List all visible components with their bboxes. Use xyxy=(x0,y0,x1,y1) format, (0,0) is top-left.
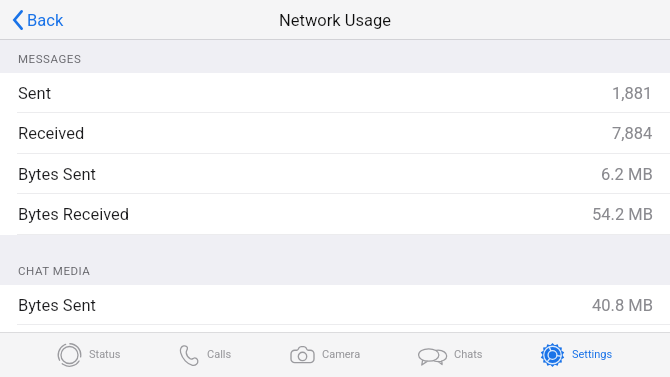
staticText: 7,884 xyxy=(612,124,653,143)
other: Back xyxy=(13,10,23,30)
button[interactable]: Sent xyxy=(0,73,670,113)
button[interactable]: Calls xyxy=(178,332,232,377)
staticText: Sent xyxy=(18,84,52,103)
staticText: 1,881 xyxy=(612,84,653,103)
button[interactable]: Chats xyxy=(418,332,483,377)
button[interactable]: Bytes Received xyxy=(0,194,670,235)
button[interactable]: Bytes Sent xyxy=(0,154,670,194)
button[interactable]: Received xyxy=(0,113,670,154)
staticText: CHAT MEDIA xyxy=(18,264,91,277)
button[interactable]: Status xyxy=(57,332,121,377)
staticText: Calls xyxy=(207,348,232,361)
button[interactable]: Settings xyxy=(540,332,613,377)
staticText: Status xyxy=(89,348,121,361)
staticText: Bytes Sent xyxy=(18,165,96,184)
staticText: Network Usage xyxy=(279,11,391,30)
staticText: 54.2 MB xyxy=(592,205,653,224)
staticText: 40.8 MB xyxy=(592,296,653,315)
staticText: Received xyxy=(18,124,85,143)
staticText: Chats xyxy=(454,348,483,361)
staticText: Camera xyxy=(322,348,361,361)
button[interactable]: Camera xyxy=(290,332,361,377)
staticText: Back xyxy=(27,11,64,30)
staticText: MESSAGES xyxy=(18,52,82,65)
staticText: 6.2 MB xyxy=(601,165,653,184)
staticText: Settings xyxy=(572,348,613,361)
button[interactable]: Back xyxy=(13,0,64,40)
button[interactable]: Bytes Sent xyxy=(0,285,670,325)
staticText: Bytes Sent xyxy=(18,296,96,315)
staticText: Bytes Received xyxy=(18,205,130,224)
